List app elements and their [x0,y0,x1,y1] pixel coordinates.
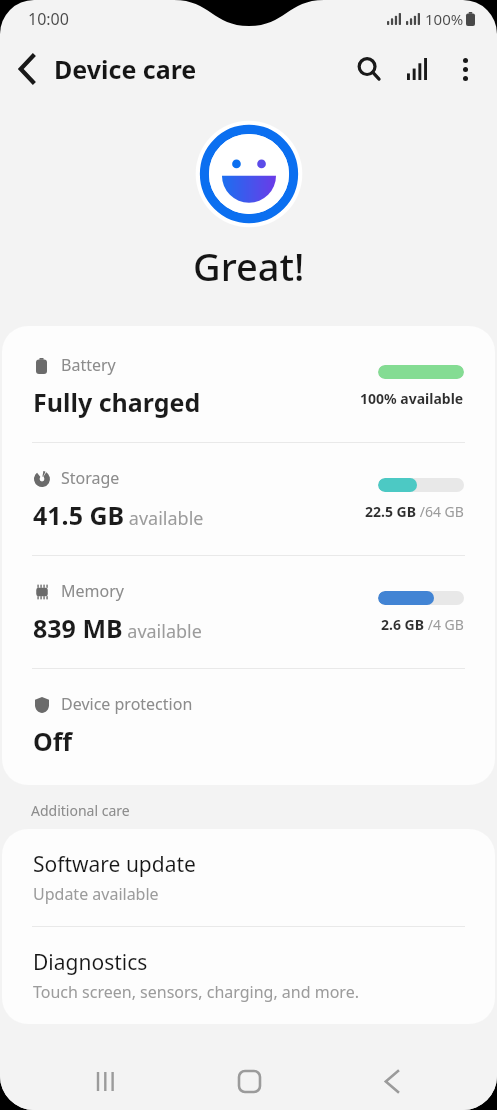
staticText: Battery [61,354,116,376]
staticText: Software update [33,850,196,879]
staticText: 839 MB available [33,611,202,645]
staticText: Off [33,724,73,758]
button[interactable]: Search [345,45,393,93]
staticText: 100% available [360,389,464,408]
staticText: Device protection [61,693,193,715]
button[interactable]: More options [441,45,489,93]
button[interactable]: Back [355,1055,427,1107]
button[interactable]: Device protection [2,669,495,781]
staticText: Update available [33,883,159,905]
staticText: Great! [193,240,305,292]
staticText: Touch screen, sensors, charging, and mor… [33,981,359,1003]
button[interactable]: Diagnostics [2,927,495,1024]
staticText: Additional care [31,801,130,820]
button[interactable]: Memory [2,556,495,668]
button[interactable]: Home [213,1055,285,1107]
button[interactable]: Recent apps [70,1055,142,1107]
staticText: 100% [425,9,464,29]
staticText: Diagnostics [33,948,148,977]
staticText: 2.6 GB /4 GB [381,615,464,634]
staticText: Fully charged [33,385,201,419]
button[interactable]: Back [0,42,54,96]
staticText: 41.5 GB available [33,498,204,532]
button[interactable]: Battery [2,330,495,442]
staticText: 10:00 [28,8,69,30]
staticText: Storage [61,467,120,489]
button[interactable]: Storage [2,443,495,555]
staticText: Device care [54,52,197,86]
staticText: Memory [61,580,124,602]
button[interactable]: Usage statistics [393,45,441,93]
button[interactable]: Software update [2,829,495,926]
staticText: 22.5 GB /64 GB [365,502,464,521]
